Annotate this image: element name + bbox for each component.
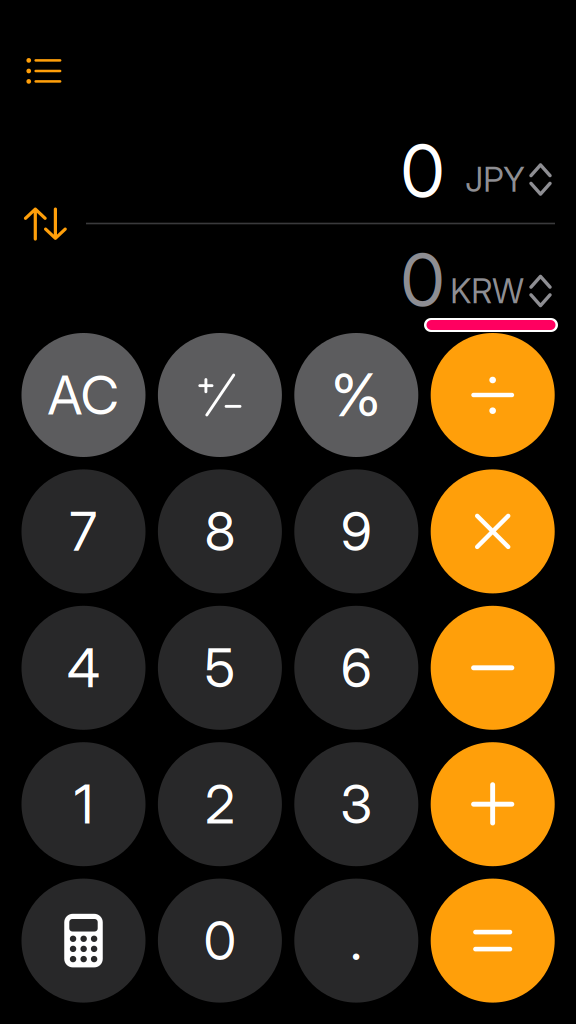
- button[interactable]: Percent: [294, 333, 418, 457]
- button[interactable]: 8: [158, 469, 282, 593]
- staticText: JPY: [465, 159, 524, 200]
- button[interactable]: Calculator: [21, 879, 145, 1003]
- button[interactable]: All clear: [21, 333, 145, 457]
- button[interactable]: Select bottom currency, KRW: [440, 260, 562, 322]
- staticText: 0: [400, 127, 444, 214]
- button[interactable]: Add: [431, 742, 555, 866]
- button[interactable]: 1: [21, 742, 145, 866]
- staticText: .: [350, 908, 362, 973]
- button[interactable]: Divide: [431, 333, 555, 457]
- staticText: 3: [340, 772, 372, 836]
- button[interactable]: 2: [158, 742, 282, 866]
- button[interactable]: 6: [294, 606, 418, 730]
- button[interactable]: 7: [21, 469, 145, 593]
- button[interactable]: Swap currencies: [15, 196, 75, 251]
- button[interactable]: 5: [158, 606, 282, 730]
- button[interactable]: 4: [21, 606, 145, 730]
- staticText: 5: [204, 635, 235, 700]
- button[interactable]: Plus minus: [158, 333, 282, 457]
- button[interactable]: 9: [294, 469, 418, 593]
- staticText: 0: [203, 908, 236, 973]
- staticText: %: [331, 359, 381, 430]
- button[interactable]: Multiply: [431, 469, 555, 593]
- staticText: 2: [205, 772, 235, 836]
- staticText: KRW: [450, 271, 524, 311]
- button[interactable]: Decimal point: [294, 879, 418, 1003]
- button[interactable]: Select top currency, JPY: [455, 148, 562, 211]
- button[interactable]: 3: [294, 742, 418, 866]
- button[interactable]: Subtract: [431, 606, 555, 730]
- staticText: 9: [341, 499, 372, 564]
- button[interactable]: 0: [158, 879, 282, 1003]
- button[interactable]: Equals: [431, 879, 555, 1003]
- staticText: 8: [204, 499, 235, 564]
- staticText: 1: [74, 772, 93, 836]
- staticText: 6: [341, 635, 372, 700]
- staticText: 7: [69, 499, 97, 564]
- button[interactable]: Currency list: [13, 45, 74, 97]
- staticText: 0: [400, 236, 444, 323]
- staticText: 4: [67, 635, 100, 700]
- staticText: AC: [47, 363, 119, 427]
